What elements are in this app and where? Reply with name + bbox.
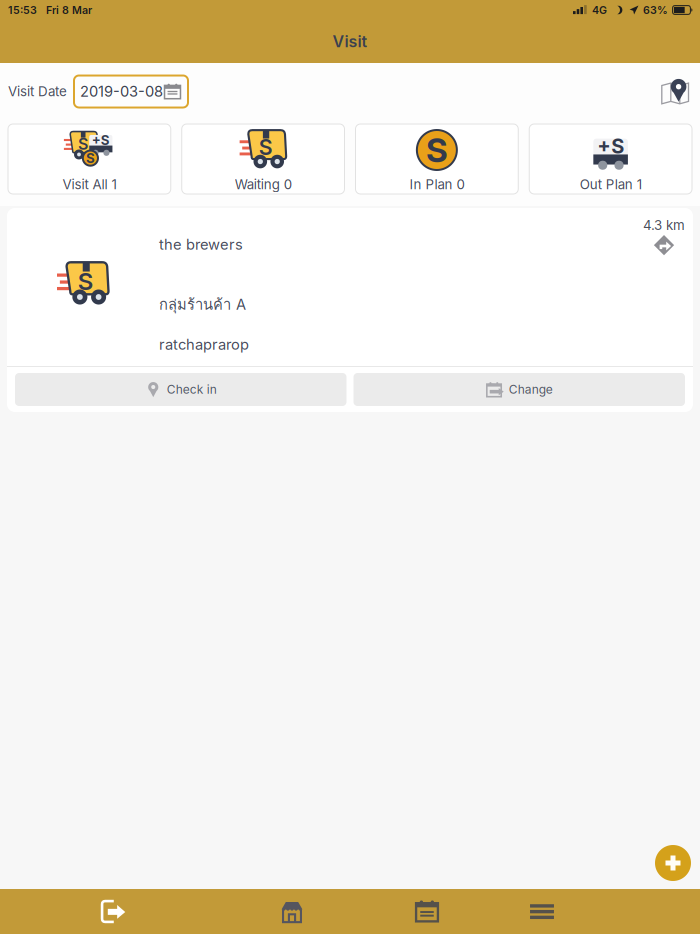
- staticText: S: [78, 267, 94, 296]
- staticText: Visit Date: [8, 83, 67, 99]
- button[interactable]: S: [8, 124, 171, 194]
- staticText: Waiting 0: [235, 176, 292, 192]
- button[interactable]: Visits: [371, 889, 483, 934]
- staticText: 4.3 km: [643, 217, 685, 233]
- staticText: 4G: [592, 3, 607, 16]
- staticText: S: [259, 134, 273, 160]
- staticText: Change: [509, 382, 553, 397]
- button[interactable]: Logout: [57, 889, 169, 934]
- staticText: 2019-03-08: [80, 83, 163, 100]
- staticText: Out Plan 1: [580, 176, 642, 192]
- staticText: the brewers: [159, 236, 243, 253]
- staticText: S: [86, 150, 95, 166]
- button[interactable]: Map: [660, 76, 690, 106]
- staticText: Fri 8 Mar: [46, 3, 92, 16]
- button[interactable]: Change: [353, 373, 685, 406]
- staticText: In Plan 0: [409, 176, 464, 192]
- staticText: Visit All 1: [62, 176, 116, 192]
- staticText: 63%: [643, 3, 668, 16]
- button[interactable]: +S: [529, 124, 692, 194]
- button[interactable]: Add: [655, 845, 691, 881]
- staticText: S: [78, 134, 88, 154]
- button[interactable]: Shops: [236, 889, 348, 934]
- staticText: +S: [92, 132, 110, 148]
- staticText: กลุ่มร้านค้า A: [159, 293, 246, 316]
- button[interactable]: 2019-03-08: [74, 75, 188, 107]
- staticText: 15:53: [8, 3, 37, 16]
- staticText: ratchaprarop: [159, 336, 249, 353]
- button[interactable]: S: [182, 124, 345, 194]
- staticText: Check in: [167, 382, 217, 397]
- staticText: +S: [597, 134, 624, 158]
- button[interactable]: Check in: [15, 373, 346, 406]
- staticText: Visit: [332, 32, 367, 51]
- staticText: S: [426, 130, 448, 170]
- button[interactable]: Menu: [486, 889, 598, 934]
- button[interactable]: S: [355, 124, 518, 194]
